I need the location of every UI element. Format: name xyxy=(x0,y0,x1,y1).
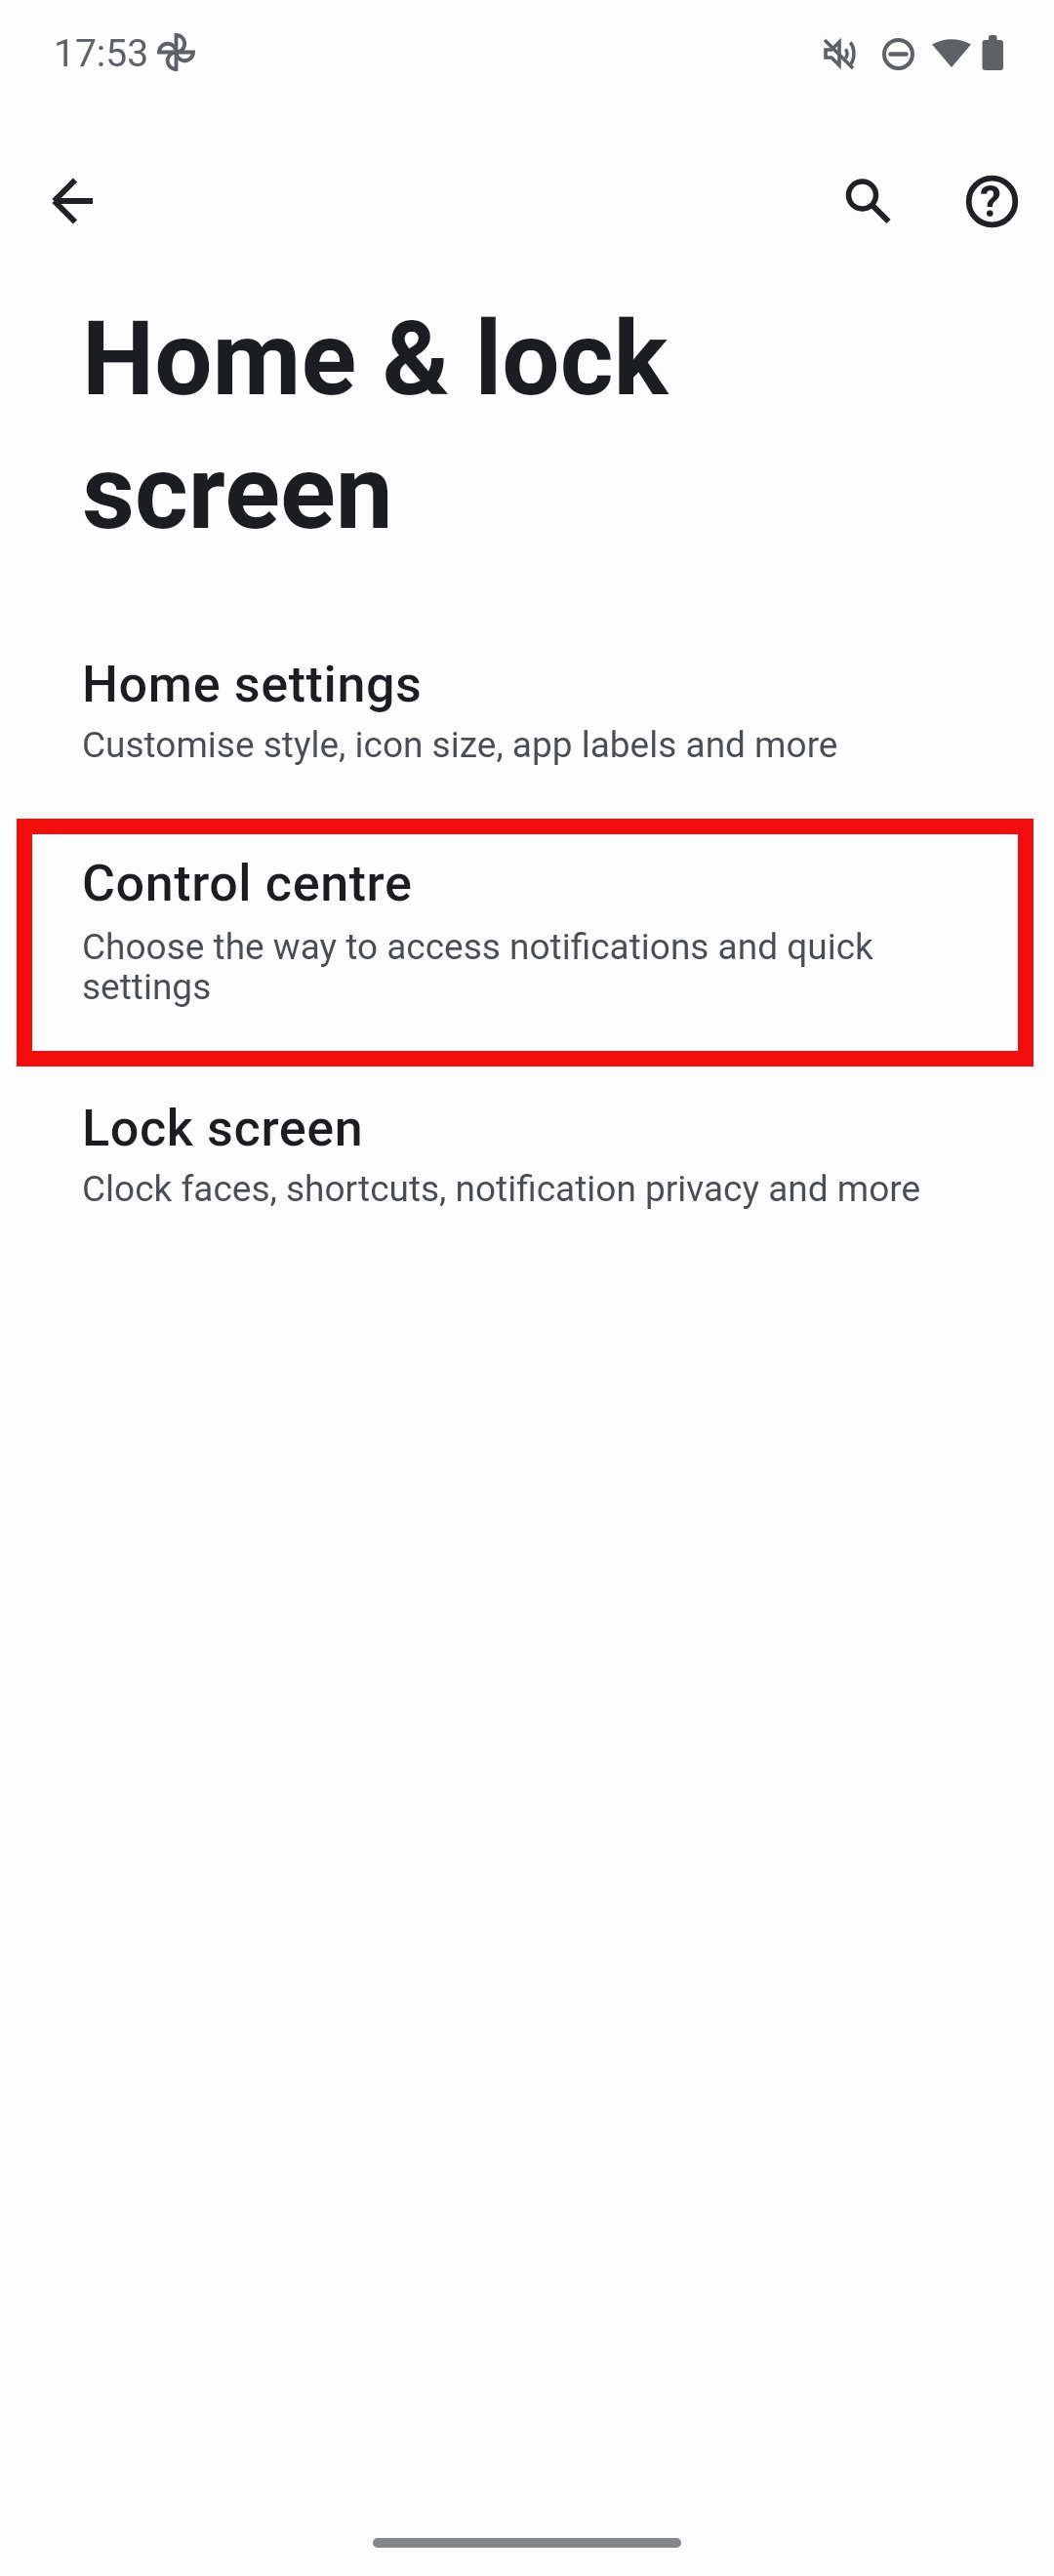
staticText: Lock screen xyxy=(82,1099,364,1158)
staticText: ? xyxy=(980,177,1001,227)
button[interactable] xyxy=(818,154,912,248)
staticText: Control centre xyxy=(82,854,413,913)
staticText: Clock faces, shortcuts, notification pri… xyxy=(82,1168,921,1210)
staticText: Choose the way to access notifications a… xyxy=(82,926,873,1008)
button[interactable]: Control centre xyxy=(0,834,1054,1053)
button[interactable]: Home settings xyxy=(0,607,1054,812)
staticText: Customise style, icon size, app labels a… xyxy=(82,724,838,766)
button[interactable]: Lock screen xyxy=(0,1083,1054,1278)
staticText: Home settings xyxy=(82,655,423,714)
button[interactable] xyxy=(27,154,121,248)
button[interactable]: ? xyxy=(945,154,1038,248)
staticText: 17:53 xyxy=(54,31,149,76)
staticText: Home & lock screen xyxy=(82,300,669,552)
